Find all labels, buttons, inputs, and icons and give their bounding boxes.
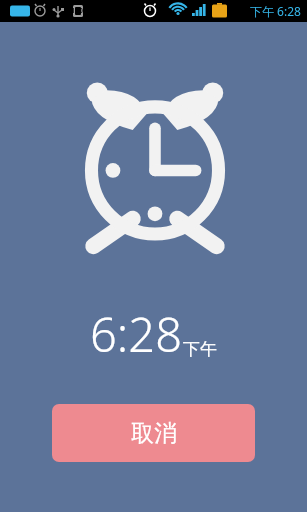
staticText: 100 [71,6,84,16]
button[interactable]: 取消 [52,404,255,462]
staticText: 取消 [131,419,177,448]
staticText: 6:28 [90,302,182,366]
staticText: 下午 6:28 [250,3,301,19]
staticText: 下午 [183,339,217,360]
other: Alarm clock [78,78,232,254]
